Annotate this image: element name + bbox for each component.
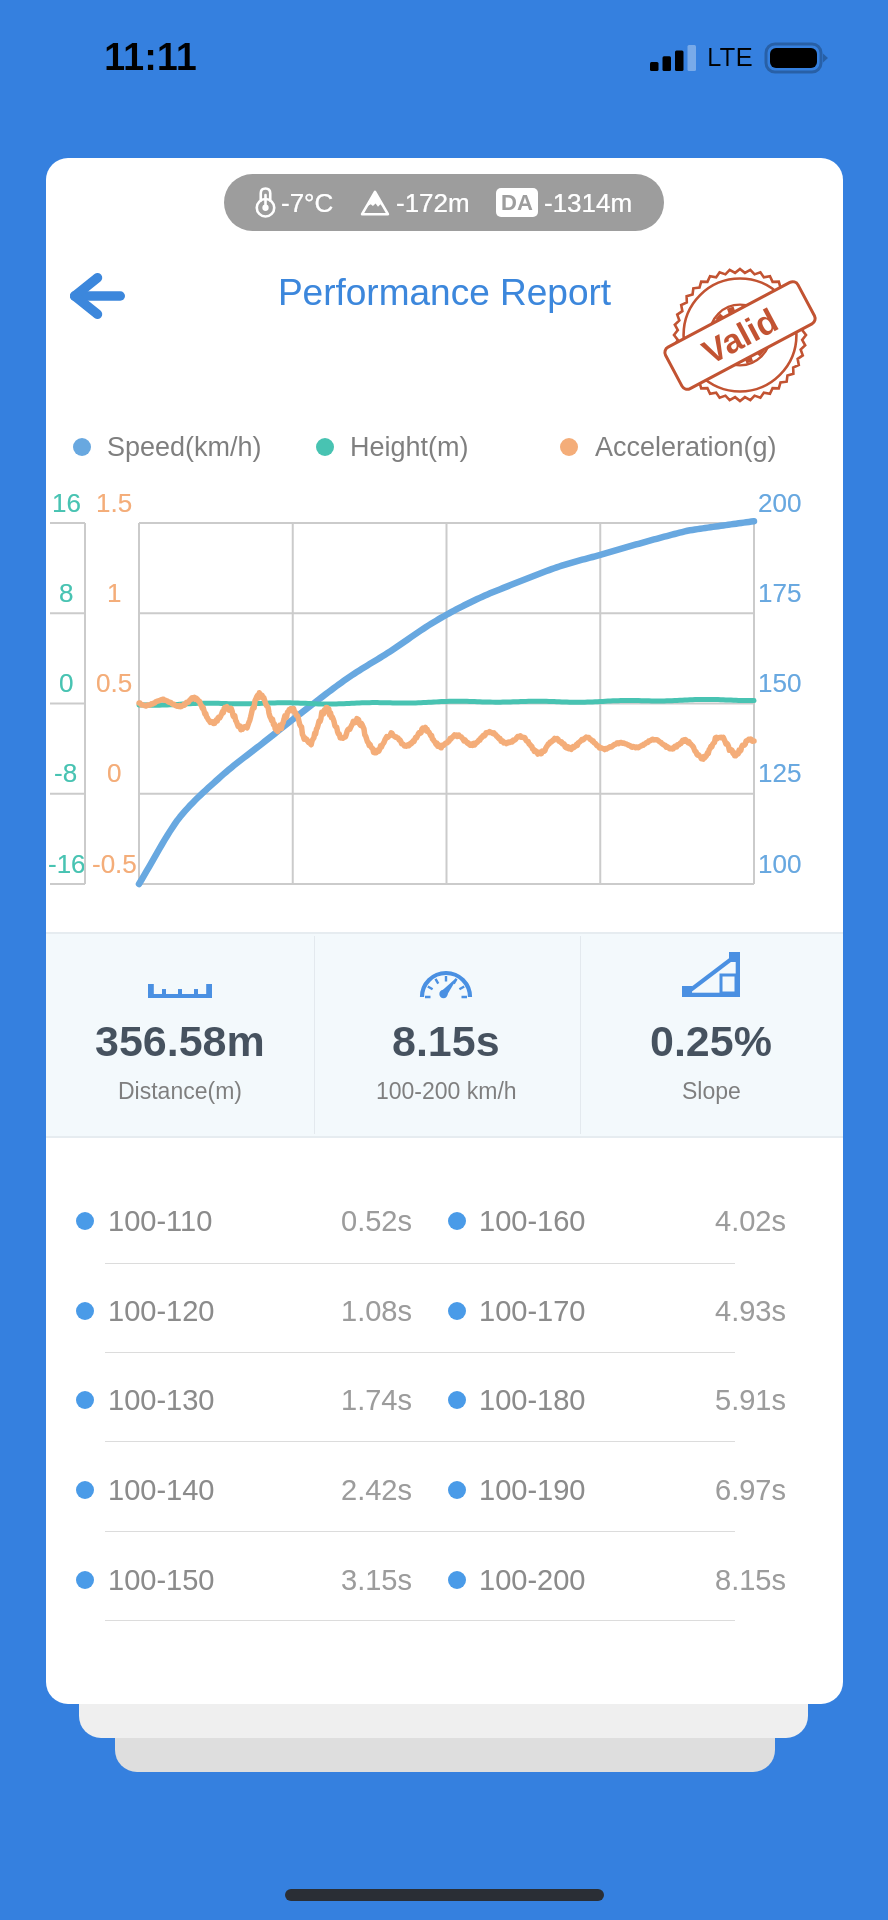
staticText: 8.15s <box>715 1564 786 1596</box>
staticText: Height(m) <box>350 432 469 462</box>
button[interactable] <box>47 932 313 1138</box>
staticText: 125 <box>758 758 802 787</box>
staticText: -7°C <box>281 188 334 217</box>
staticText: Speed(km/h) <box>107 432 262 462</box>
staticText: 8 <box>59 578 74 607</box>
staticText: -0.5 <box>92 849 137 878</box>
button[interactable] <box>69 426 283 468</box>
staticText: Acceleration(g) <box>595 432 777 462</box>
staticText: -1314m <box>544 188 633 217</box>
staticText: 356.58m <box>95 1017 265 1065</box>
staticText: 0 <box>59 668 74 697</box>
button[interactable] <box>443 1366 800 1434</box>
staticText: 100-150 <box>108 1564 215 1596</box>
staticText: 2.42s <box>341 1474 412 1506</box>
staticText: 16 <box>52 488 81 517</box>
staticText: Distance(m) <box>118 1078 242 1104</box>
button[interactable] <box>443 1456 800 1524</box>
staticText: 1.5 <box>96 488 133 517</box>
staticText: 5.91s <box>715 1384 786 1416</box>
staticText: 100-190 <box>479 1474 586 1506</box>
staticText: -172m <box>396 188 470 217</box>
staticText: 8.15s <box>392 1017 500 1065</box>
staticText: 100-140 <box>108 1474 215 1506</box>
staticText: 175 <box>758 578 802 607</box>
staticText: -16 <box>48 849 84 878</box>
staticText: 6.97s <box>715 1474 786 1506</box>
staticText: 3.15s <box>341 1564 412 1596</box>
staticText: 100-110 <box>108 1205 213 1237</box>
button[interactable] <box>313 932 579 1138</box>
button[interactable] <box>71 1187 427 1255</box>
button[interactable] <box>443 1546 800 1614</box>
staticText: LTE <box>707 42 753 71</box>
staticText: -8 <box>54 758 78 787</box>
button[interactable] <box>443 1277 800 1345</box>
staticText: 1.08s <box>341 1295 412 1327</box>
staticText: 0 <box>107 758 122 787</box>
button[interactable]: Back <box>48 251 146 341</box>
staticText: DA <box>501 190 533 215</box>
button[interactable] <box>312 426 526 468</box>
staticText: 0.52s <box>341 1205 412 1237</box>
staticText: Valid <box>696 300 784 371</box>
staticText: Slope <box>682 1078 741 1104</box>
staticText: 150 <box>758 668 802 697</box>
button[interactable] <box>71 1366 427 1434</box>
button[interactable]: -7°C <box>224 174 664 231</box>
staticText: 11:11 <box>104 36 197 78</box>
staticText: 4.93s <box>715 1295 786 1327</box>
staticText: 100-170 <box>479 1295 586 1327</box>
staticText: 4.02s <box>715 1205 786 1237</box>
staticText: 1.74s <box>341 1384 412 1416</box>
staticText: 100-120 <box>108 1295 215 1327</box>
staticText: 100-200 km/h <box>376 1078 517 1104</box>
staticText: 100-180 <box>479 1384 586 1416</box>
staticText: 1 <box>107 578 122 607</box>
button[interactable] <box>71 1277 427 1345</box>
button[interactable] <box>443 1187 800 1255</box>
button[interactable] <box>71 1546 427 1614</box>
button[interactable] <box>578 932 843 1138</box>
button[interactable] <box>556 426 771 468</box>
staticText: 100-160 <box>479 1205 586 1237</box>
staticText: 0.25% <box>650 1017 772 1065</box>
staticText: 0.5 <box>96 668 133 697</box>
staticText: 100 <box>758 849 802 878</box>
staticText: 100-200 <box>479 1564 586 1596</box>
staticText: Performance Report <box>46 272 843 313</box>
button[interactable] <box>71 1456 427 1524</box>
staticText: 200 <box>758 488 802 517</box>
staticText: 100-130 <box>108 1384 215 1416</box>
